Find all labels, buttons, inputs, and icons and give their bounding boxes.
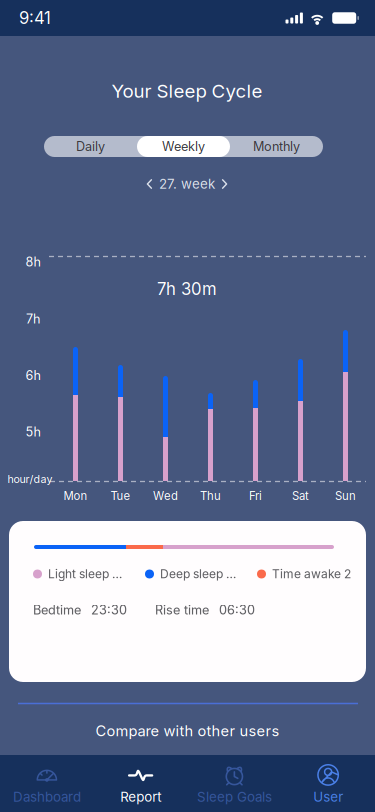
staticText: Bedtime xyxy=(33,602,81,618)
staticText: Deep sleep 16% xyxy=(160,567,239,581)
staticText: Weekly xyxy=(162,139,205,154)
button[interactable]: Sleep Goals xyxy=(187,755,281,812)
staticText: Sun xyxy=(335,489,356,503)
staticText: 27. week xyxy=(159,176,215,192)
staticText: 7h xyxy=(26,311,40,327)
staticText: 30 xyxy=(176,279,202,299)
staticText: 7h xyxy=(157,279,176,299)
staticText: 9:41 xyxy=(19,8,51,28)
staticText: Fri xyxy=(249,489,262,503)
staticText: Sleep Goals xyxy=(197,789,272,805)
staticText: Sat xyxy=(292,489,309,503)
staticText: User xyxy=(313,789,343,805)
button[interactable]: User xyxy=(281,755,375,812)
staticText: Your Sleep Cycle xyxy=(111,80,262,102)
staticText: 06:30 xyxy=(219,602,255,618)
button[interactable]: Daily xyxy=(44,136,137,157)
staticText: Light sleep 84% xyxy=(48,567,127,581)
staticText: Tue xyxy=(110,489,130,503)
staticText: Mon xyxy=(63,489,87,503)
button[interactable]: Weekly xyxy=(137,136,230,157)
staticText: Report xyxy=(120,789,161,805)
staticText: Time awake 2 xyxy=(272,567,351,581)
staticText: m xyxy=(202,279,217,299)
staticText: Dashboard xyxy=(13,789,81,805)
button[interactable]: Dashboard xyxy=(0,755,94,812)
staticText: Daily xyxy=(76,139,105,154)
staticText: Thu xyxy=(200,489,221,503)
staticText: 23:30 xyxy=(91,602,127,618)
staticText: 6h xyxy=(25,368,40,383)
staticText: Wed xyxy=(153,489,178,503)
staticText: 8h xyxy=(25,254,40,270)
staticText: hour/day xyxy=(7,472,52,485)
staticText: Rise time xyxy=(155,602,209,618)
button[interactable]: 27. week xyxy=(146,174,228,194)
button[interactable]: Monthly xyxy=(230,136,323,157)
staticText: Compare with other users xyxy=(95,722,279,740)
staticText: 5h xyxy=(25,424,40,440)
staticText: Monthly xyxy=(253,139,300,154)
button[interactable]: Report xyxy=(94,755,188,812)
